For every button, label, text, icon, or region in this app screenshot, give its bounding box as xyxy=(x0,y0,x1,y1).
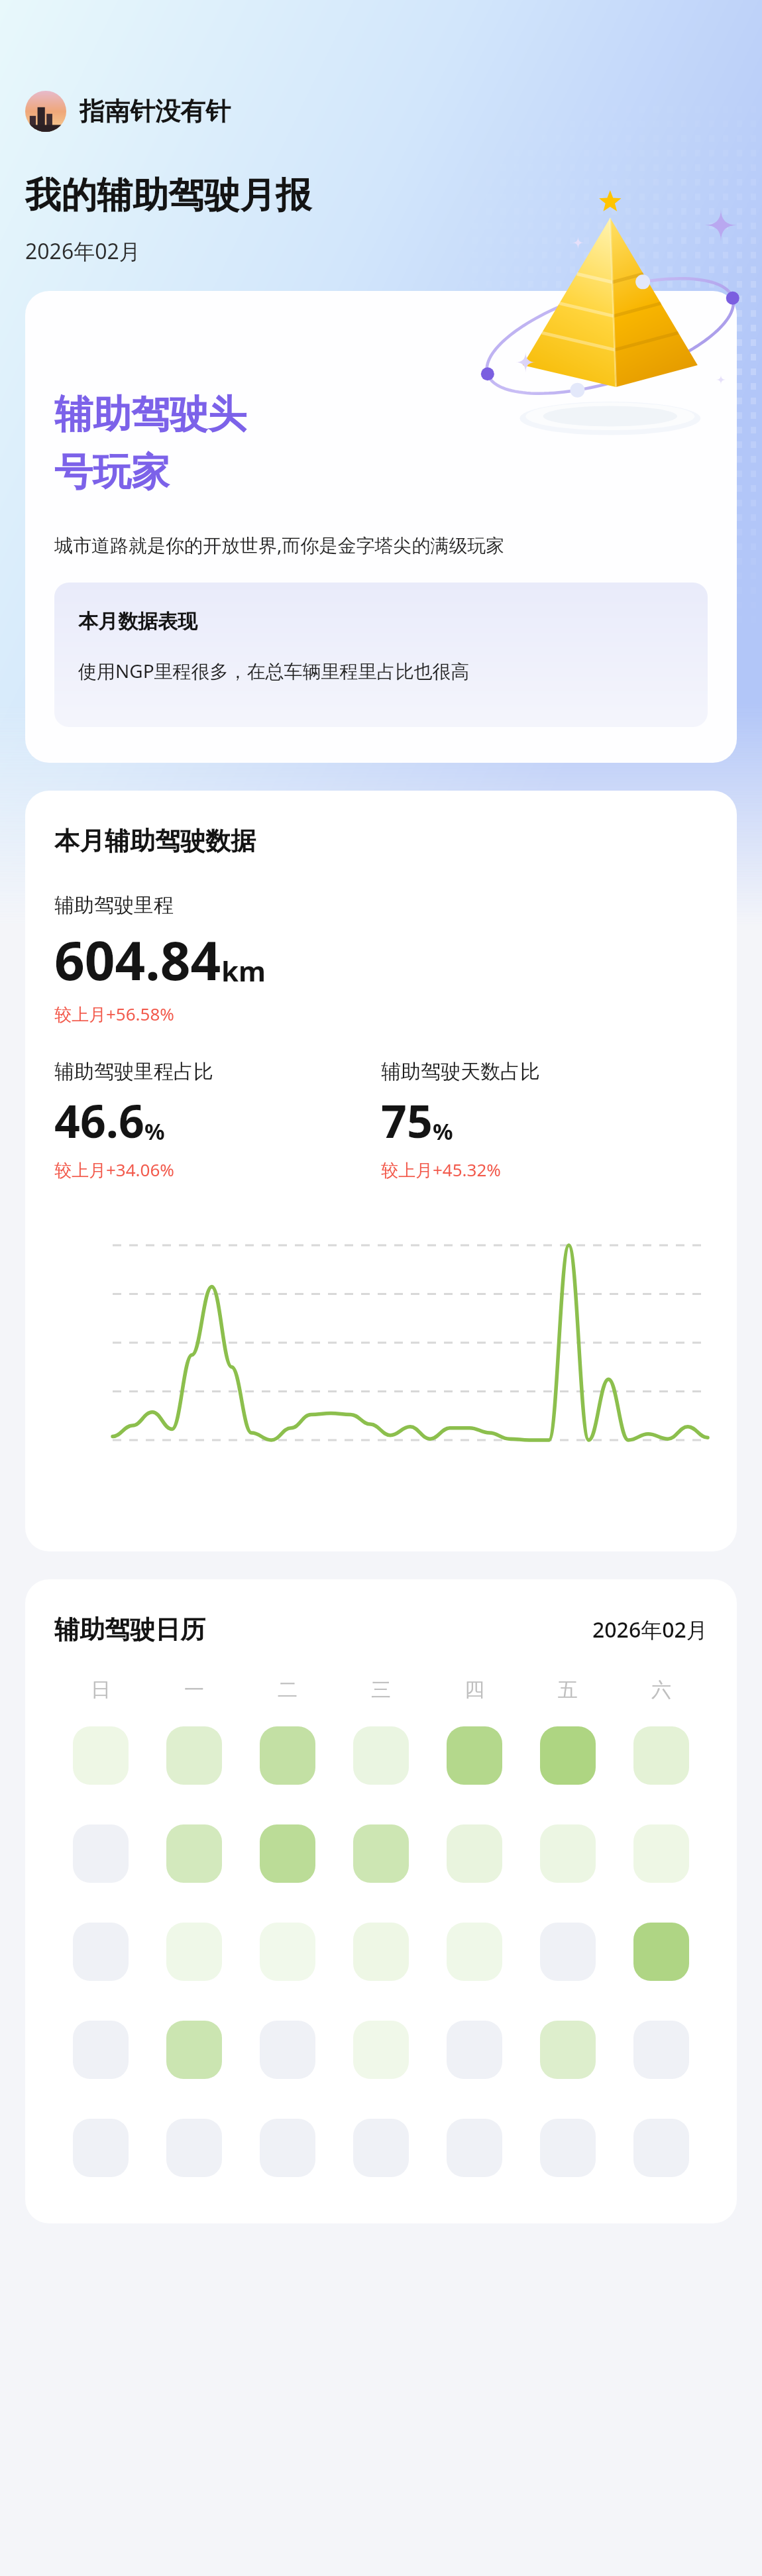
button[interactable] xyxy=(73,1824,129,1883)
staticText: 日 xyxy=(91,1677,111,1703)
button[interactable] xyxy=(633,1726,689,1785)
staticText: 辅助驾驶日历 xyxy=(54,1614,205,1646)
staticText: 辅助驾驶里程占比 xyxy=(54,1059,213,1084)
button[interactable] xyxy=(353,2021,409,2079)
button[interactable] xyxy=(353,2119,409,2177)
button[interactable] xyxy=(353,1824,409,1883)
button[interactable] xyxy=(540,1824,596,1883)
button[interactable] xyxy=(353,1923,409,1981)
button[interactable] xyxy=(447,2021,502,2079)
button[interactable] xyxy=(166,1824,222,1883)
staticText: 六 xyxy=(651,1677,671,1703)
button[interactable] xyxy=(447,2119,502,2177)
staticText: 较上月+56.58% xyxy=(54,1002,174,1026)
button[interactable] xyxy=(353,1726,409,1785)
staticText: 使用NGP里程很多，在总车辆里程里占比也很高 xyxy=(78,658,470,683)
button[interactable]: Profile avatar xyxy=(25,91,231,132)
staticText: 604.84 xyxy=(54,923,221,995)
button[interactable] xyxy=(260,1824,315,1883)
staticText: 较上月+34.06% xyxy=(54,1158,174,1182)
staticText: 2026年02月 xyxy=(592,1615,708,1644)
button[interactable] xyxy=(633,2021,689,2079)
button[interactable] xyxy=(540,2119,596,2177)
staticText: 三 xyxy=(371,1677,391,1703)
button[interactable] xyxy=(633,2119,689,2177)
staticText: 本月辅助驾驶数据 xyxy=(54,825,256,857)
button[interactable] xyxy=(73,2021,129,2079)
staticText: 75 xyxy=(381,1090,433,1151)
button[interactable] xyxy=(260,1726,315,1785)
button[interactable] xyxy=(73,1923,129,1981)
staticText: 2026年02月 xyxy=(25,237,140,266)
button[interactable] xyxy=(633,1824,689,1883)
staticText: 城市道路就是你的开放世界,而你是金字塔尖的满级玩家 xyxy=(54,532,505,557)
button[interactable]: 辅助驾驶头 xyxy=(25,291,737,763)
staticText: 辅助驾驶头 xyxy=(54,390,246,439)
staticText: 五 xyxy=(558,1677,578,1703)
button[interactable] xyxy=(73,1726,129,1785)
staticText: 四 xyxy=(464,1677,484,1703)
button[interactable] xyxy=(447,1824,502,1883)
staticText: 较上月+45.32% xyxy=(381,1158,501,1182)
other: Profile avatar xyxy=(25,91,66,132)
button[interactable] xyxy=(260,2021,315,2079)
button[interactable] xyxy=(540,2021,596,2079)
staticText: 二 xyxy=(278,1677,298,1703)
button[interactable] xyxy=(447,1726,502,1785)
staticText: 辅助驾驶天数占比 xyxy=(381,1059,540,1084)
staticText: 指南针没有针 xyxy=(80,95,231,127)
staticText: 一 xyxy=(184,1677,204,1703)
button[interactable] xyxy=(260,2119,315,2177)
staticText: % xyxy=(144,1116,165,1147)
staticText: 本月数据表现 xyxy=(78,609,197,634)
staticText: 46.6 xyxy=(54,1090,144,1151)
button[interactable] xyxy=(166,2119,222,2177)
staticText: 我的辅助驾驶月报 xyxy=(25,173,311,218)
button[interactable] xyxy=(447,1923,502,1981)
button[interactable] xyxy=(540,1923,596,1981)
button[interactable] xyxy=(166,1923,222,1981)
button[interactable] xyxy=(73,2119,129,2177)
button[interactable] xyxy=(166,1726,222,1785)
button[interactable] xyxy=(540,1726,596,1785)
staticText: 辅助驾驶里程 xyxy=(54,893,174,918)
staticText: % xyxy=(433,1116,453,1147)
staticText: 号玩家 xyxy=(54,448,170,496)
button[interactable]: 本月辅助驾驶数据 xyxy=(25,791,737,1551)
staticText: km xyxy=(221,952,266,989)
button[interactable] xyxy=(633,1923,689,1981)
button[interactable] xyxy=(166,2021,222,2079)
button[interactable] xyxy=(260,1923,315,1981)
button[interactable]: 辅助驾驶日历 xyxy=(25,1579,737,2223)
